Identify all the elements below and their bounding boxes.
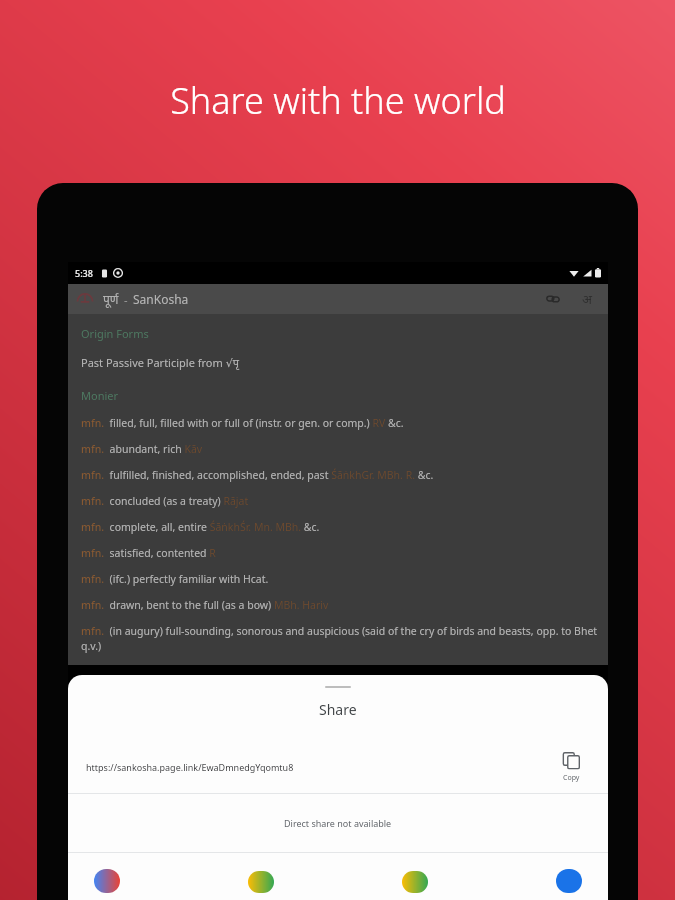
staticText: mfn. concluded (as a treaty) Rājat bbox=[81, 494, 249, 508]
staticText: Origin Forms bbox=[81, 326, 149, 341]
staticText: Past Passive Participle from √पृ bbox=[81, 355, 239, 370]
button[interactable]: Copy bbox=[548, 752, 594, 783]
staticText: Share with the world bbox=[170, 76, 506, 125]
button[interactable]: Share target bbox=[552, 853, 586, 893]
button[interactable]: mfn. satisfied, contented R bbox=[81, 546, 598, 572]
button[interactable]: mfn. (in augury) full-sounding, sonorous… bbox=[81, 624, 598, 665]
button[interactable]: mfn. abundant, rich Kāv bbox=[81, 442, 598, 468]
staticText: 5:38 bbox=[75, 267, 93, 279]
staticText: mfn. satisfied, contented R bbox=[81, 546, 216, 560]
staticText: https://sankosha.page.link/EwaDmnedgYqom… bbox=[86, 761, 548, 773]
staticText: mfn. abundant, rich Kāv bbox=[81, 442, 203, 456]
button[interactable]: mfn. filled, full, filled with or full o… bbox=[81, 416, 598, 442]
button[interactable]: Copy link bbox=[540, 286, 566, 312]
staticText: - bbox=[124, 292, 128, 307]
staticText: Copy bbox=[563, 773, 580, 783]
staticText: पूर्ण bbox=[103, 291, 119, 307]
button[interactable]: Script bbox=[574, 286, 600, 312]
button[interactable]: Share target bbox=[398, 853, 432, 893]
staticText: अ bbox=[582, 290, 592, 308]
button[interactable]: Share target bbox=[244, 853, 278, 893]
staticText: Share bbox=[319, 700, 357, 719]
staticText: SanKosha bbox=[133, 291, 189, 307]
staticText: Monier bbox=[81, 388, 119, 403]
button[interactable]: Share target bbox=[90, 853, 124, 893]
staticText: mfn. (in augury) full-sounding, sonorous… bbox=[81, 624, 598, 653]
staticText: mfn. (ifc.) perfectly familiar with Hcat… bbox=[81, 572, 269, 586]
staticText: mfn. fulfilled, finished, accomplished, … bbox=[81, 468, 434, 482]
staticText: mfn. drawn, bent to the full (as a bow) … bbox=[81, 598, 329, 612]
button[interactable]: mfn. drawn, bent to the full (as a bow) … bbox=[81, 598, 598, 624]
staticText: Direct share not available bbox=[284, 817, 392, 829]
staticText: mfn. complete, all, entire ŚāṅkhŚr. Mn. … bbox=[81, 520, 320, 534]
button[interactable]: mfn. fulfilled, finished, accomplished, … bbox=[81, 468, 598, 494]
staticText: mfn. filled, full, filled with or full o… bbox=[81, 416, 404, 430]
button[interactable]: mfn. (ifc.) perfectly familiar with Hcat… bbox=[81, 572, 598, 598]
button[interactable]: mfn. concluded (as a treaty) Rājat bbox=[81, 494, 598, 520]
button[interactable]: mfn. complete, all, entire ŚāṅkhŚr. Mn. … bbox=[81, 520, 598, 546]
